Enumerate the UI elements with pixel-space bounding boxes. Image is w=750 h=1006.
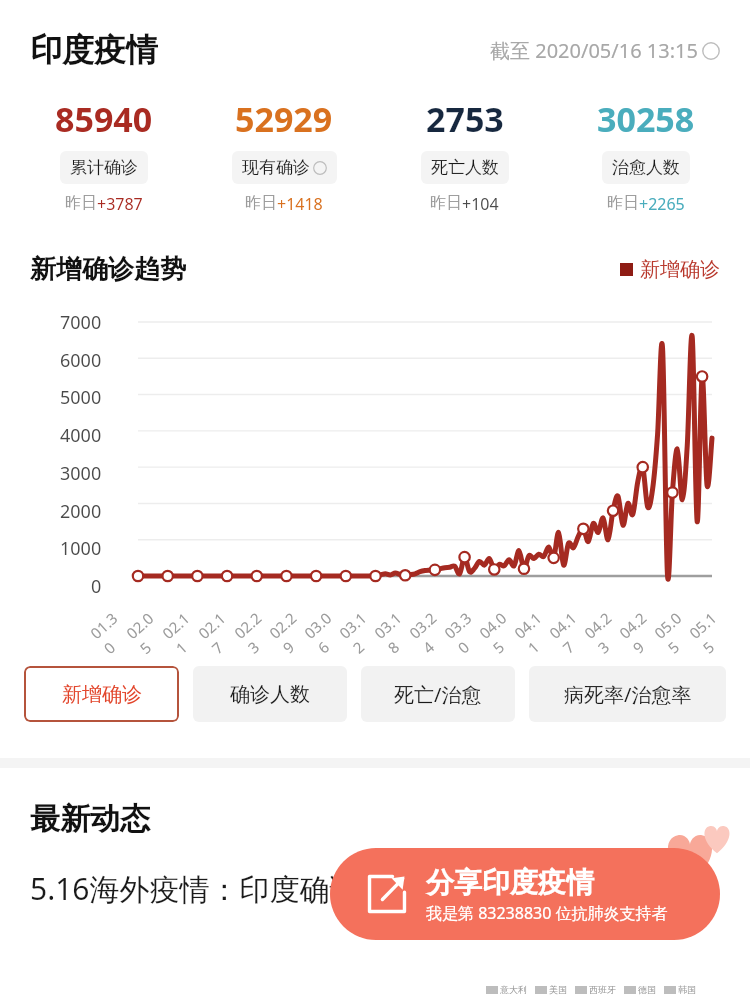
- staticText: 05.15: [685, 604, 738, 657]
- staticText: 病死率/治愈率: [564, 681, 692, 708]
- staticText: 04.17: [545, 604, 598, 657]
- staticText: 7000: [60, 310, 102, 335]
- staticText: 03.12: [335, 604, 388, 657]
- staticText: 最新动态: [30, 800, 150, 838]
- staticText: 4000: [60, 423, 102, 448]
- staticText: 85940: [55, 96, 153, 142]
- staticText: +104: [462, 193, 499, 215]
- staticText: 30258: [597, 96, 695, 142]
- staticText: 意大利: [500, 984, 527, 995]
- staticText: 昨日: [245, 193, 277, 213]
- button[interactable]: 新增确诊: [620, 257, 720, 282]
- staticText: 0: [91, 574, 102, 599]
- staticText: 02.29: [265, 604, 318, 657]
- staticText: 德国: [638, 984, 656, 995]
- staticText: 02.11: [158, 604, 211, 658]
- staticText: 累计确诊: [70, 157, 138, 178]
- staticText: 昨日: [430, 193, 462, 213]
- button[interactable]: 新增确诊: [24, 666, 179, 722]
- staticText: 西班牙: [589, 984, 616, 995]
- staticText: 我是第 83238830 位抗肺炎支持者: [426, 902, 668, 924]
- button[interactable]: Share: [330, 848, 720, 940]
- other: Help: [702, 42, 720, 60]
- staticText: 印度疫情: [30, 30, 158, 70]
- staticText: 52929: [235, 96, 333, 142]
- button[interactable]: 截至 2020/05/16 13:15: [490, 37, 720, 64]
- staticText: 04.11: [510, 604, 563, 657]
- staticText: 分享印度疫情: [426, 865, 594, 900]
- staticText: 昨日: [65, 193, 97, 213]
- button[interactable]: 现有确诊: [232, 151, 337, 184]
- button[interactable]: 死亡人数: [421, 151, 509, 184]
- staticText: 01.30: [86, 604, 139, 658]
- other: Share: [364, 871, 410, 917]
- staticText: 治愈人数: [612, 157, 680, 178]
- staticText: 04.23: [580, 604, 633, 657]
- staticText: 5.16海外疫情：印度确诊超: [30, 868, 390, 909]
- staticText: 02.05: [122, 604, 175, 658]
- staticText: 04.05: [475, 604, 528, 657]
- button[interactable]: 死亡/治愈: [361, 666, 515, 722]
- staticText: 昨日: [607, 193, 639, 213]
- staticText: 现有确诊: [242, 157, 310, 178]
- staticText: +2265: [639, 193, 685, 215]
- staticText: 3000: [60, 461, 102, 486]
- staticText: 02.23: [230, 604, 283, 657]
- staticText: 03.06: [300, 604, 353, 657]
- staticText: 美国: [549, 984, 567, 995]
- staticText: 5000: [60, 385, 102, 410]
- staticText: 03.18: [370, 604, 423, 657]
- staticText: 1000: [60, 536, 102, 561]
- staticText: 确诊人数: [230, 682, 310, 707]
- staticText: 截至 2020/05/16 13:15: [490, 37, 698, 64]
- staticText: 6000: [60, 348, 102, 373]
- staticText: 2753: [426, 96, 504, 142]
- staticText: 04.29: [615, 604, 668, 657]
- staticText: 新增确诊: [640, 257, 720, 282]
- staticText: 03.24: [405, 604, 458, 657]
- staticText: +3787: [97, 193, 143, 215]
- staticText: +1418: [277, 193, 323, 215]
- button[interactable]: 确诊人数: [193, 666, 347, 722]
- button[interactable]: 病死率/治愈率: [529, 666, 726, 722]
- staticText: 韩国: [678, 984, 696, 995]
- staticText: 死亡人数: [431, 157, 499, 178]
- staticText: 新增确诊: [62, 682, 142, 707]
- staticText: 新增确诊趋势: [30, 253, 186, 286]
- staticText: 2000: [60, 499, 102, 524]
- staticText: 03.30: [440, 604, 493, 657]
- staticText: 05.05: [650, 604, 703, 657]
- staticText: 02.17: [194, 604, 247, 658]
- staticText: 死亡/治愈: [394, 681, 482, 708]
- button[interactable]: 治愈人数: [602, 151, 690, 184]
- button[interactable]: 累计确诊: [60, 151, 148, 184]
